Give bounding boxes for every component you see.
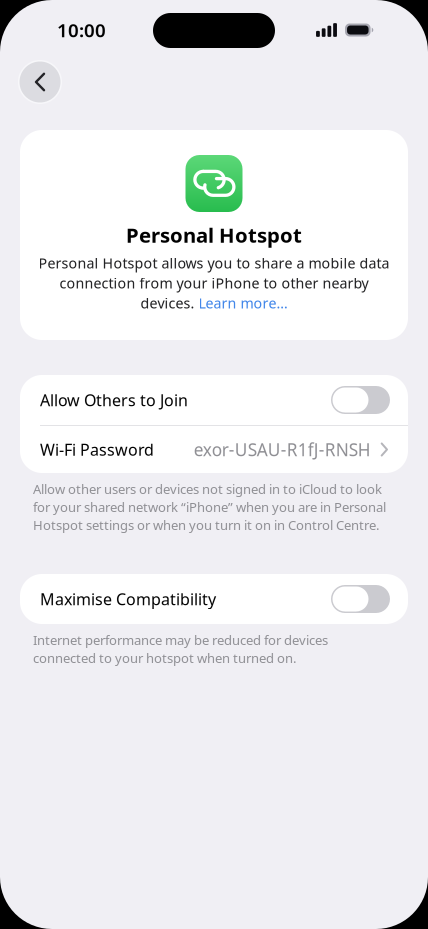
staticText: Personal Hotspot xyxy=(126,221,302,248)
button[interactable]: Learn more… xyxy=(198,294,287,312)
staticText: Maximise Compatibility xyxy=(40,588,216,610)
staticText: Wi-Fi Password xyxy=(40,439,154,460)
staticText: 10:00 xyxy=(57,18,106,42)
staticText: connected to your hotspot when turned on… xyxy=(33,649,297,667)
staticText: Allow other users or devices not signed … xyxy=(33,480,382,498)
button[interactable]: Wi-Fi Password xyxy=(20,426,408,473)
button[interactable]: Maximise Compatibility xyxy=(20,574,408,624)
button[interactable]: Allow Others to Join xyxy=(20,375,408,425)
staticText: devices. xyxy=(140,294,198,312)
staticText: Internet performance may be reduced for … xyxy=(33,631,328,649)
staticText: for your shared network “iPhone” when yo… xyxy=(33,498,386,516)
staticText: Learn more… xyxy=(198,294,287,312)
staticText: Hotspot settings or when you turn it on … xyxy=(33,516,380,534)
staticText: connection from your iPhone to other nea… xyxy=(59,274,368,292)
staticText: Personal Hotspot allows you to share a m… xyxy=(38,254,389,272)
staticText: exor-USAU-R1fJ-RNSH xyxy=(194,438,371,461)
button[interactable]: Back xyxy=(18,60,62,104)
staticText: Allow Others to Join xyxy=(40,389,188,411)
